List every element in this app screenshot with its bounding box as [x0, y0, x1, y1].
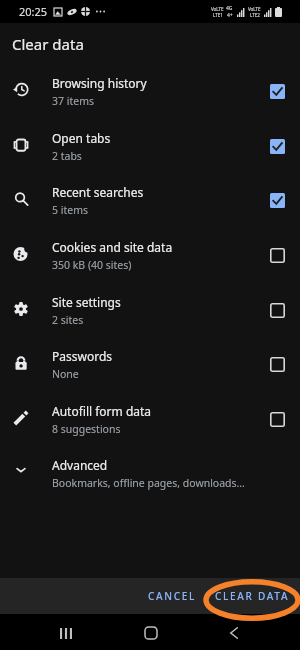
staticText: 4+	[227, 12, 233, 19]
staticText: CANCEL	[148, 589, 197, 603]
staticText: Open tabs	[52, 130, 111, 146]
button[interactable]: CANCEL	[139, 580, 215, 612]
button[interactable]: Home	[131, 615, 171, 650]
staticText: 2 tabs	[52, 149, 82, 163]
staticText: Cookies and site data	[52, 239, 173, 255]
staticText: 5 items	[52, 203, 89, 217]
button[interactable]: Recent apps	[46, 615, 86, 650]
button[interactable]: Back	[214, 615, 254, 650]
staticText: Clear data	[12, 34, 84, 54]
button[interactable]: Cookies and site data	[0, 226, 300, 281]
staticText: Browsing history	[52, 75, 147, 91]
staticText: Passwords	[52, 348, 113, 364]
staticText: 37 items	[52, 94, 95, 108]
staticText: 4G	[226, 5, 233, 12]
button[interactable]: Passwords	[0, 335, 300, 390]
staticText: VoLTE	[248, 6, 261, 12]
staticText: Site settings	[52, 294, 121, 310]
button[interactable]: Autofill form data	[0, 390, 300, 445]
staticText: 350 kB (40 sites)	[52, 258, 132, 272]
staticText: None	[52, 367, 79, 381]
staticText: LTE2	[250, 12, 260, 18]
staticText: Advanced	[52, 457, 108, 473]
button[interactable]: Site settings	[0, 281, 300, 336]
staticText: 2 sites	[52, 313, 84, 327]
staticText: 20:25	[19, 4, 48, 19]
button[interactable]: CLEAR DATA	[215, 580, 300, 612]
button[interactable]: Advanced	[0, 444, 300, 499]
button[interactable]: Recent searches	[0, 171, 300, 226]
staticText: CLEAR DATA	[215, 589, 290, 603]
staticText: VoLTE	[211, 6, 224, 12]
staticText: 8 suggestions	[52, 422, 121, 436]
staticText: Recent searches	[52, 184, 144, 200]
button[interactable]: Browsing history	[0, 62, 300, 117]
button[interactable]: Open tabs	[0, 117, 300, 172]
staticText: LTE1	[213, 12, 223, 18]
staticText: Autofill form data	[52, 403, 152, 419]
staticText: Bookmarks, offline pages, downloads…	[52, 476, 245, 490]
